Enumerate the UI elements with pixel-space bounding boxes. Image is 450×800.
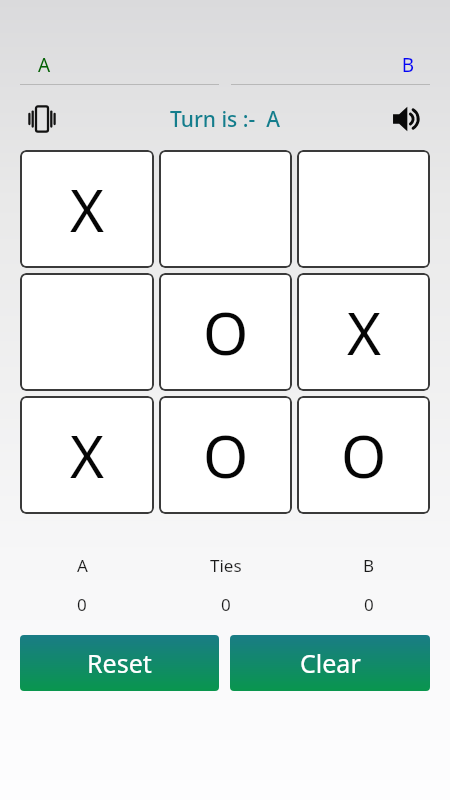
staticText: O xyxy=(203,293,249,372)
staticText: A xyxy=(77,554,88,577)
button[interactable]: O xyxy=(159,396,292,514)
staticText: 0 xyxy=(221,593,231,616)
button[interactable]: Clear xyxy=(230,635,430,691)
staticText: O xyxy=(341,416,387,495)
button[interactable] xyxy=(20,273,154,391)
button[interactable]: Reset xyxy=(20,635,219,691)
staticText: A xyxy=(38,52,51,78)
staticText: B xyxy=(363,554,375,577)
staticText: Ties xyxy=(210,554,242,577)
staticText: X xyxy=(70,170,104,249)
staticText: Reset xyxy=(87,646,152,680)
staticText: B xyxy=(231,52,414,78)
button[interactable] xyxy=(297,150,430,268)
button[interactable]: O xyxy=(159,273,292,391)
button[interactable]: A xyxy=(20,52,219,85)
staticText: X xyxy=(70,416,104,495)
staticText: O xyxy=(203,416,249,495)
staticText: X xyxy=(347,293,381,372)
button[interactable]: X xyxy=(20,396,154,514)
staticText: Clear xyxy=(300,646,361,680)
button[interactable]: Toggle sound xyxy=(388,99,428,139)
button[interactable]: X xyxy=(297,273,430,391)
staticText: Turn is :- A xyxy=(170,105,280,134)
button[interactable]: Toggle vibration xyxy=(22,99,62,139)
button[interactable]: X xyxy=(20,150,154,268)
button[interactable]: B xyxy=(231,52,430,85)
staticText: 0 xyxy=(77,593,87,616)
button[interactable]: O xyxy=(297,396,430,514)
staticText: 0 xyxy=(364,593,374,616)
button[interactable] xyxy=(159,150,292,268)
